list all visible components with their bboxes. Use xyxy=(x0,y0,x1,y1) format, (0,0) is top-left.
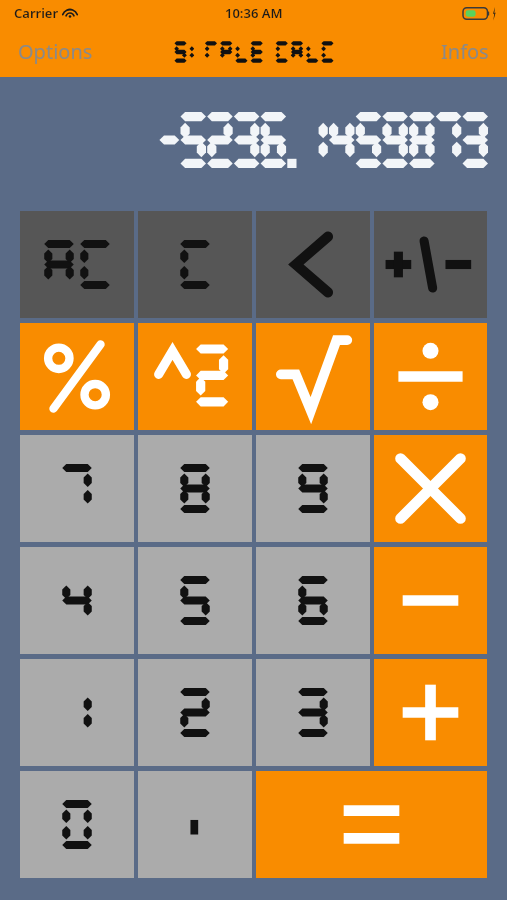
button[interactable]: Square root xyxy=(256,323,370,430)
button[interactable]: Backspace xyxy=(256,211,370,318)
button[interactable]: Clear xyxy=(138,211,252,318)
button[interactable]: Percent xyxy=(20,323,134,430)
button[interactable]: Minus xyxy=(374,547,487,654)
button[interactable]: All clear xyxy=(20,211,134,318)
button[interactable]: Equals xyxy=(256,771,487,878)
staticText: Options xyxy=(18,38,93,65)
button[interactable]: Plus xyxy=(374,659,487,766)
button[interactable]: Zero xyxy=(20,771,134,878)
button[interactable]: Decimal separator xyxy=(138,771,252,878)
button[interactable]: Three xyxy=(256,659,370,766)
button[interactable]: One xyxy=(20,659,134,766)
button[interactable]: Options xyxy=(0,30,111,73)
button[interactable]: Seven xyxy=(20,435,134,542)
staticText: Infos xyxy=(441,38,489,65)
button[interactable]: Divide xyxy=(374,323,487,430)
button[interactable]: Square xyxy=(138,323,252,430)
button[interactable]: Multiply xyxy=(374,435,487,542)
button[interactable]: Five xyxy=(138,547,252,654)
button[interactable]: Six xyxy=(256,547,370,654)
staticText: 10:36 AM xyxy=(225,4,283,22)
staticText: Carrier xyxy=(14,4,59,22)
button[interactable]: Nine xyxy=(256,435,370,542)
button[interactable]: Plus minus xyxy=(374,211,487,318)
button[interactable]: Four xyxy=(20,547,134,654)
button[interactable]: Two xyxy=(138,659,252,766)
button[interactable]: Eight xyxy=(138,435,252,542)
button[interactable]: Infos xyxy=(423,30,507,73)
